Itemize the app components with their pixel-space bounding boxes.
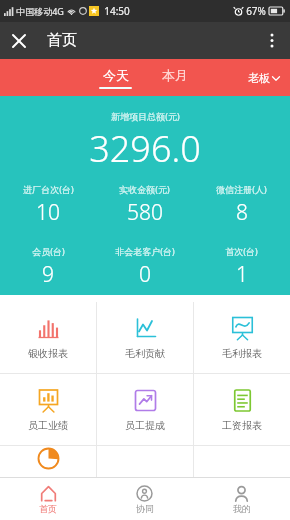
staticText: 今天: [103, 67, 129, 83]
button[interactable]: Close: [0, 22, 37, 59]
staticText: 8: [236, 198, 248, 227]
staticText: 本月: [162, 67, 188, 83]
staticText: 微信注册(人): [216, 183, 267, 195]
button[interactable]: 老板: [238, 71, 290, 85]
button[interactable]: 工资报表: [194, 374, 290, 445]
staticText: 新增项目总额(元): [111, 110, 180, 122]
button[interactable]: 员工提成: [97, 374, 193, 445]
staticText: 3296.0: [89, 124, 201, 173]
staticText: 实收金额(元): [119, 183, 170, 195]
staticText: 员工提成: [125, 419, 165, 432]
staticText: 非会老客户(台): [115, 245, 175, 257]
staticText: 首次(台): [225, 245, 258, 257]
button[interactable]: More options: [253, 22, 290, 59]
staticText: 毛利报表: [222, 347, 262, 360]
button[interactable]: 本月: [150, 59, 199, 96]
staticText: 67%: [246, 4, 266, 18]
button[interactable]: 毛利报表: [194, 302, 290, 373]
staticText: 毛利贡献: [125, 347, 165, 360]
staticText: 580: [127, 198, 163, 227]
staticText: 14:50: [104, 4, 130, 18]
button[interactable]: 项目报表: [0, 446, 96, 477]
staticText: 协同: [136, 503, 154, 514]
staticText: 员工业绩: [28, 419, 68, 432]
button[interactable]: 首页: [0, 478, 96, 520]
button[interactable]: 协同: [96, 478, 193, 520]
staticText: 0: [139, 260, 151, 289]
staticText: 10: [36, 198, 60, 227]
staticText: 1: [236, 260, 248, 289]
button[interactable]: 毛利贡献: [97, 302, 193, 373]
staticText: 老板: [248, 71, 270, 85]
staticText: 首页: [47, 31, 77, 50]
staticText: 首页: [39, 503, 57, 514]
staticText: 中国移动4G: [16, 5, 64, 17]
button[interactable]: 我的: [193, 478, 290, 520]
staticText: 会员(台): [32, 245, 65, 257]
button[interactable]: 银收报表: [0, 302, 96, 373]
staticText: 9: [42, 260, 54, 289]
staticText: 银收报表: [28, 347, 68, 360]
button[interactable]: 今天: [91, 59, 140, 96]
staticText: 工资报表: [222, 419, 262, 432]
staticText: 我的: [233, 503, 251, 514]
staticText: 进厂台次(台): [23, 183, 74, 195]
button[interactable]: 员工业绩: [0, 374, 96, 445]
